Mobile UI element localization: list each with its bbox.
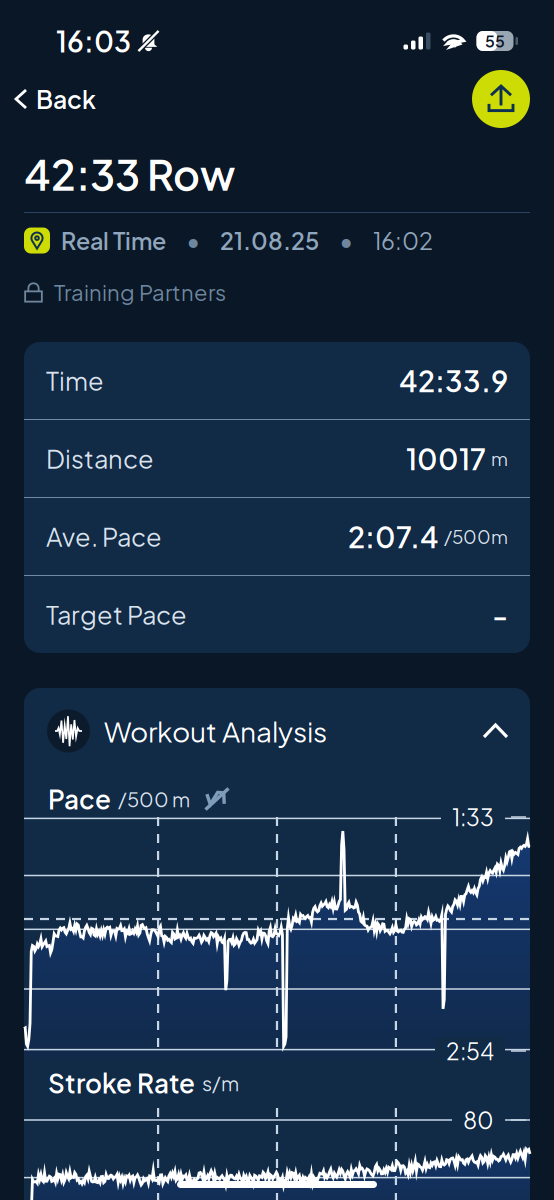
staticText: 16:02 [373, 226, 433, 255]
staticText: 2:54 [446, 1037, 494, 1065]
staticText: Training Partners [54, 278, 226, 306]
staticText: 1:33 [452, 803, 494, 831]
staticText: Time [46, 364, 104, 396]
staticText: • [186, 226, 200, 255]
staticText: Stroke Rate [48, 1067, 195, 1099]
staticText: 42:33 Row [24, 148, 235, 200]
staticText: /500 m [118, 786, 190, 812]
staticText: Distance [46, 442, 154, 474]
staticText: Real Time [61, 226, 166, 255]
button[interactable]: Share [472, 70, 554, 128]
staticText: • [339, 226, 353, 255]
staticText: m [491, 447, 508, 470]
staticText: Target Pace [46, 598, 187, 630]
button[interactable]: Workout Analysis [24, 688, 530, 774]
staticText: 2:07.4 [348, 518, 439, 554]
staticText: 21.08.25 [220, 226, 319, 255]
staticText: 55 [485, 31, 505, 51]
staticText: Workout Analysis [104, 713, 327, 749]
staticText: Back [36, 83, 96, 115]
staticText: 16:03 [56, 23, 131, 59]
staticText: Pace [48, 783, 111, 815]
staticText: 10017 [406, 440, 486, 476]
staticText: 80 [463, 1106, 494, 1134]
button[interactable]: Back [0, 73, 114, 125]
staticText: 42:33.9 [399, 362, 508, 398]
staticText: Ave. Pace [46, 520, 162, 552]
staticText: s/m [202, 1070, 239, 1096]
staticText: - [492, 596, 508, 632]
staticText: /500m [444, 525, 508, 548]
